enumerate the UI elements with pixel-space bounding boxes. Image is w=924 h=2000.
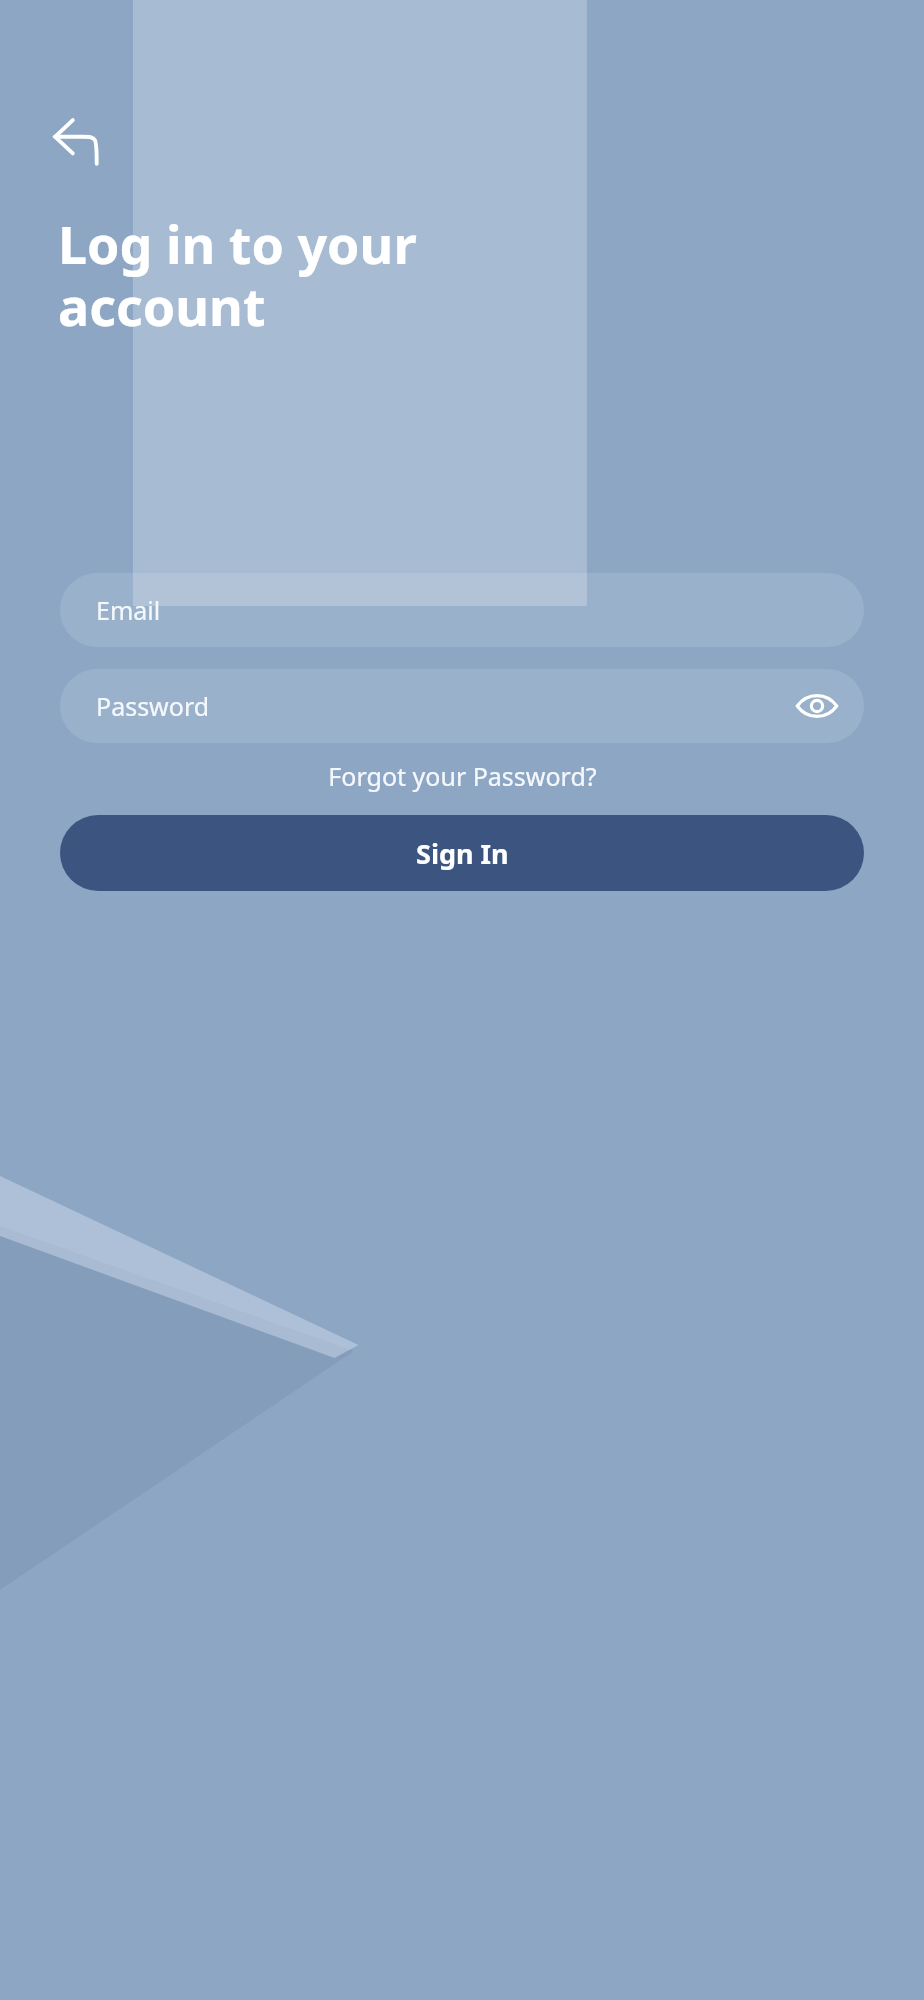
staticText: Forgot your Password?	[328, 759, 597, 793]
button[interactable]: Forgot your Password?	[60, 759, 864, 793]
button[interactable]: Email	[60, 573, 864, 647]
staticText: Email	[96, 593, 161, 627]
staticText: Log in to your account	[58, 208, 417, 341]
button[interactable]: Sign In	[60, 815, 864, 891]
button[interactable]: Back	[42, 106, 114, 178]
staticText: Password	[96, 689, 210, 723]
button[interactable]: Password	[60, 669, 864, 743]
button[interactable]: Show password	[788, 677, 846, 735]
staticText: Sign In	[416, 835, 509, 872]
